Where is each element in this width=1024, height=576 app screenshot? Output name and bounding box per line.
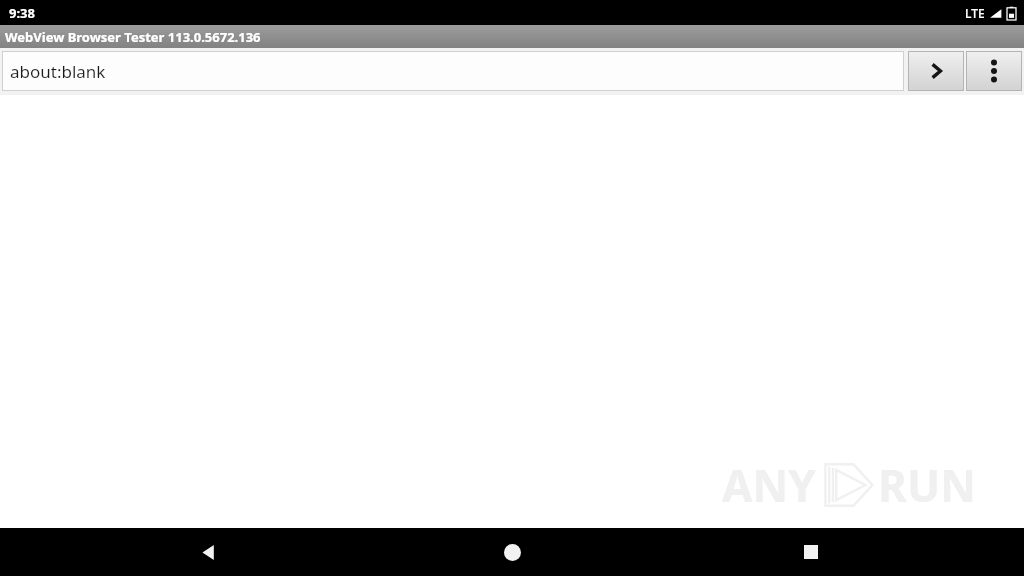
staticText: WebView Browser Tester 113.0.5672.136	[5, 28, 261, 46]
staticText: RUN	[878, 455, 976, 515]
button[interactable]: More options	[966, 51, 1022, 91]
button[interactable]: Home	[452, 528, 572, 576]
button[interactable]: Back	[123, 528, 293, 576]
button[interactable]: Recent apps	[726, 528, 896, 576]
button[interactable]: Go	[908, 51, 964, 91]
staticText: ANY	[722, 455, 816, 515]
staticText: LTE	[965, 5, 985, 21]
staticText: 9:38	[9, 4, 35, 22]
button[interactable]: about:blank	[2, 51, 904, 91]
staticText: about:blank	[10, 60, 106, 83]
